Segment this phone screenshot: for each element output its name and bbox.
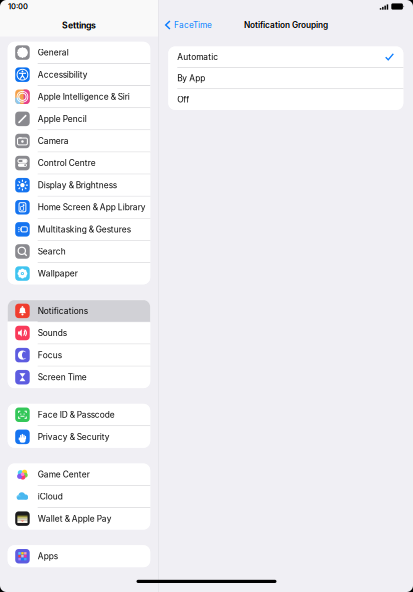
staticText: Accessibility <box>38 70 88 80</box>
button[interactable]: Sounds <box>8 322 150 344</box>
button[interactable]: Apps <box>8 545 150 567</box>
button[interactable]: Privacy & Security <box>8 426 150 448</box>
button[interactable]: Display & Brightness <box>8 174 150 196</box>
staticText: Notifications <box>38 306 88 316</box>
staticText: Sounds <box>38 328 67 338</box>
button[interactable]: Focus <box>8 344 150 366</box>
staticText: Automatic <box>177 52 218 62</box>
button[interactable]: Automatic <box>168 46 403 67</box>
staticText: By App <box>177 73 205 83</box>
staticText: 10:00 <box>8 2 28 11</box>
button[interactable]: FaceTime <box>159 17 216 33</box>
staticText: iCloud <box>38 491 63 502</box>
staticText: Apps <box>38 551 58 561</box>
button[interactable]: Control Centre <box>8 152 150 174</box>
staticText: Display & Brightness <box>38 180 117 190</box>
staticText: Wallpaper <box>38 268 78 279</box>
staticText: FaceTime <box>174 20 212 30</box>
button[interactable]: Apple Intelligence & Siri <box>8 86 150 107</box>
button[interactable]: Game Center <box>8 464 150 485</box>
button[interactable]: Accessibility <box>8 64 150 85</box>
button[interactable]: Face ID & Passcode <box>8 404 150 425</box>
button[interactable]: Search <box>8 241 150 262</box>
button[interactable]: Home Screen & App Library <box>8 196 150 218</box>
staticText: Control Centre <box>38 158 96 168</box>
staticText: Home Screen & App Library <box>38 202 146 212</box>
button[interactable]: Multitasking & Gestures <box>8 219 150 240</box>
button[interactable]: Camera <box>8 130 150 152</box>
staticText: Multitasking & Gestures <box>38 224 131 234</box>
staticText: Game Center <box>38 469 90 479</box>
button[interactable]: Wallet & Apple Pay <box>8 508 150 529</box>
staticText: Privacy & Security <box>38 432 110 442</box>
button[interactable]: Apple Pencil <box>8 108 150 130</box>
staticText: Off <box>177 94 189 105</box>
staticText: Camera <box>38 136 69 146</box>
staticText: General <box>38 47 69 58</box>
staticText: Apple Pencil <box>38 114 87 124</box>
button[interactable]: By App <box>168 68 403 88</box>
staticText: Focus <box>38 350 62 360</box>
staticText: Search <box>38 246 66 256</box>
staticText: Screen Time <box>38 372 87 382</box>
button[interactable]: Notifications <box>8 300 150 322</box>
staticText: Face ID & Passcode <box>38 410 115 420</box>
button[interactable]: Wallpaper <box>8 263 150 284</box>
button[interactable]: iCloud <box>8 486 150 507</box>
staticText: Notification Grouping <box>244 20 328 30</box>
staticText: Settings <box>62 20 96 30</box>
button[interactable]: Off <box>168 89 403 110</box>
staticText: Wallet & Apple Pay <box>38 514 112 524</box>
staticText: Apple Intelligence & Siri <box>38 92 130 102</box>
button[interactable]: General <box>8 42 150 63</box>
button[interactable]: Screen Time <box>8 366 150 388</box>
